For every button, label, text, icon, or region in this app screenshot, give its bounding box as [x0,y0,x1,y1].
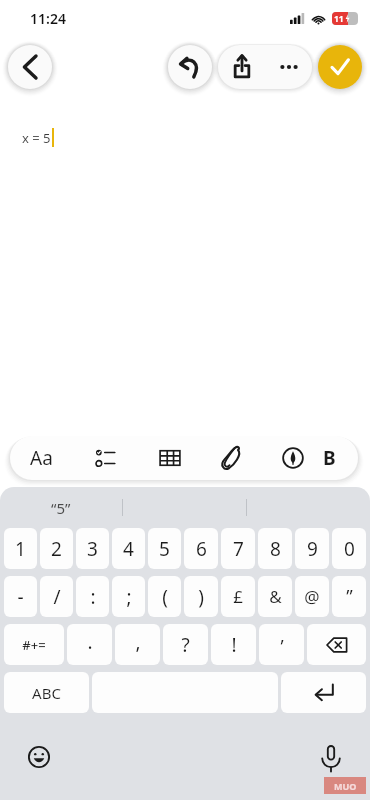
button[interactable]: 8 [258,528,292,569]
button[interactable]: Bold [323,436,358,480]
button[interactable]: ABC [4,672,89,713]
button[interactable]: ! [211,624,256,665]
staticText: #+= [22,636,46,654]
button[interactable]: 7 [221,528,255,569]
button[interactable]: Checklist [72,436,139,480]
button[interactable]: Insert table [139,436,201,480]
button[interactable]: , [115,624,160,665]
staticText: B [323,445,336,471]
button[interactable]: More options [265,45,312,89]
button[interactable]: £ [221,576,255,617]
button[interactable]: ’ [259,624,304,665]
button[interactable]: / [40,576,73,617]
staticText: : [90,584,96,610]
staticText: 1 [15,536,26,562]
button[interactable]: ” [332,576,366,617]
button[interactable]: Enter [281,672,366,713]
staticText: 11 [334,13,344,25]
button[interactable]: Markup [263,436,323,480]
staticText: - [17,584,24,610]
staticText: 9 [307,536,318,562]
button[interactable]: & [258,576,292,617]
staticText: 4 [123,536,134,562]
button[interactable]: 1 [4,528,37,569]
button[interactable]: Done [318,45,362,89]
button[interactable]: 3 [76,528,109,569]
button[interactable]: 9 [295,528,329,569]
staticText: & [269,585,282,608]
button[interactable]: 4 [112,528,145,569]
staticText: 3 [87,536,98,562]
staticText: 8 [270,536,281,562]
button[interactable]: - [4,576,37,617]
button[interactable]: Text style [10,436,72,480]
staticText: ? [181,632,190,658]
button[interactable]: Share [218,45,265,89]
button[interactable]: 2 [40,528,73,569]
staticText: @ [304,585,320,608]
staticText: 6 [196,536,207,562]
button[interactable]: ? [163,624,208,665]
button[interactable]: ; [112,576,145,617]
button[interactable]: @ [295,576,329,617]
staticText: ” [346,584,353,609]
button[interactable]: 0 [332,528,366,569]
button[interactable]: #+= [4,624,64,665]
staticText: 5 [159,536,170,562]
button[interactable]: Emoji [22,740,56,774]
button[interactable]: “5” [0,487,122,528]
staticText: £ [233,585,243,608]
button[interactable]: 6 [184,528,218,569]
staticText: , [135,629,141,655]
staticText: MUO [334,780,357,792]
button[interactable]: ) [184,576,218,617]
staticText: ’ [280,634,284,659]
staticText: 2 [51,536,62,562]
staticText: 7 [233,536,244,562]
staticText: / [53,584,61,610]
staticText: x = 5 [22,129,51,147]
button[interactable]: 5 [148,528,181,569]
button[interactable]: Voice input [314,740,348,774]
button[interactable]: Backspace [307,624,366,665]
button[interactable]: Back [8,45,52,89]
staticText: “5” [51,498,71,518]
button[interactable]: ( [148,576,181,617]
button[interactable]: Undo [168,45,212,89]
staticText: Aa [30,445,53,471]
staticText: ! [231,632,237,658]
staticText: ; [126,584,132,610]
staticText: 11:24 [30,9,66,28]
staticText: ( [162,584,168,610]
button[interactable]: . [67,624,112,665]
staticText: 0 [344,536,355,562]
button[interactable]: x = 5 [0,98,370,430]
staticText: ) [198,584,204,610]
staticText: ABC [32,683,61,703]
button[interactable]: Attach [201,436,263,480]
staticText: . [87,629,93,655]
button[interactable]: : [76,576,109,617]
